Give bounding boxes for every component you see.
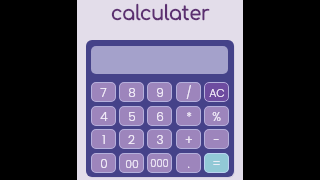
button[interactable]: 8 (119, 82, 144, 102)
staticText: AC (209, 85, 225, 100)
button[interactable]: 6 (147, 106, 172, 126)
button[interactable]: 00 (119, 153, 144, 173)
staticText: 00 (125, 156, 139, 171)
staticText: * (186, 108, 192, 125)
button[interactable]: / (176, 82, 201, 102)
staticText: = (212, 155, 221, 172)
button[interactable]: AC (204, 82, 229, 102)
button[interactable]: 0 (91, 153, 116, 173)
button[interactable]: % (204, 106, 229, 126)
button[interactable]: . (176, 153, 201, 173)
staticText: % (212, 108, 221, 125)
staticText: - (213, 131, 220, 148)
button[interactable]: 5 (119, 106, 144, 126)
staticText: 8 (128, 84, 136, 101)
button[interactable]: 3 (147, 129, 172, 149)
button[interactable]: 4 (91, 106, 116, 126)
button[interactable]: 000 (147, 153, 172, 173)
staticText: 4 (100, 108, 108, 125)
staticText: / (186, 84, 192, 101)
button[interactable]: = (204, 153, 229, 173)
staticText: 9 (156, 84, 164, 101)
button[interactable]: 1 (91, 129, 116, 149)
staticText: 000 (150, 156, 169, 170)
button[interactable]: - (204, 129, 229, 149)
staticText: 3 (156, 131, 164, 148)
staticText: 7 (100, 84, 107, 101)
button[interactable]: 2 (119, 129, 144, 149)
staticText: 1 (102, 131, 106, 148)
button[interactable]: * (176, 106, 201, 126)
staticText: 5 (128, 108, 136, 125)
staticText: 0 (100, 155, 108, 172)
button[interactable]: 7 (91, 82, 116, 102)
button[interactable]: 9 (147, 82, 172, 102)
staticText: 6 (156, 108, 164, 125)
staticText: calculater (111, 3, 210, 24)
staticText: + (185, 131, 193, 148)
staticText: 2 (128, 131, 135, 148)
staticText: . (187, 155, 190, 172)
button[interactable]: + (176, 129, 201, 149)
